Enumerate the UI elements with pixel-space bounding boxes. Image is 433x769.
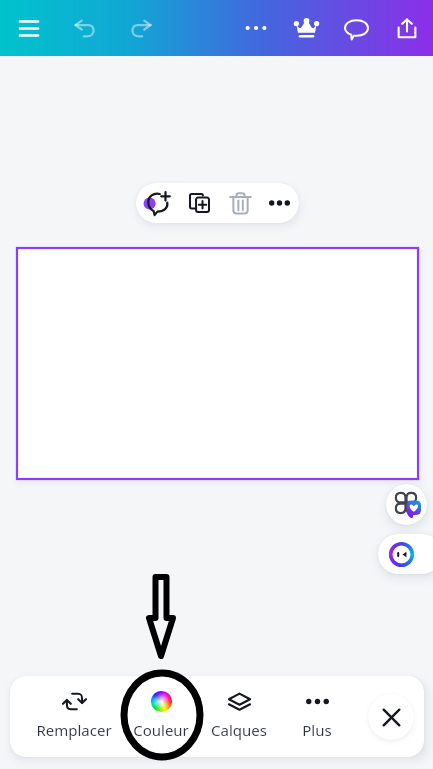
button[interactable]: Calques [200,684,278,748]
button[interactable]: Undo [58,0,112,56]
button[interactable]: Add comment [136,183,178,223]
button[interactable]: Duplicate [178,183,220,223]
button[interactable]: Share [381,0,433,56]
button[interactable]: Delete [220,183,260,223]
button[interactable]: Close [368,694,414,740]
button[interactable]: Remplacer [35,684,113,748]
button[interactable]: Design canvas [17,248,418,479]
staticText: Couleur [133,720,189,740]
button[interactable]: Canva Pro [281,0,331,56]
button[interactable]: Menu [0,0,58,56]
button[interactable]: More options [260,183,299,223]
button[interactable]: Elements [386,484,427,525]
button[interactable]: Collaborators [378,534,433,574]
button[interactable]: Redo [112,0,168,56]
button[interactable]: Couleur [122,684,200,748]
staticText: Calques [211,720,267,740]
button[interactable]: Comments [331,0,381,56]
staticText: Plus [302,720,332,740]
button[interactable]: Plus [278,684,356,748]
button[interactable]: More [231,0,281,56]
staticText: Remplacer [36,720,112,740]
